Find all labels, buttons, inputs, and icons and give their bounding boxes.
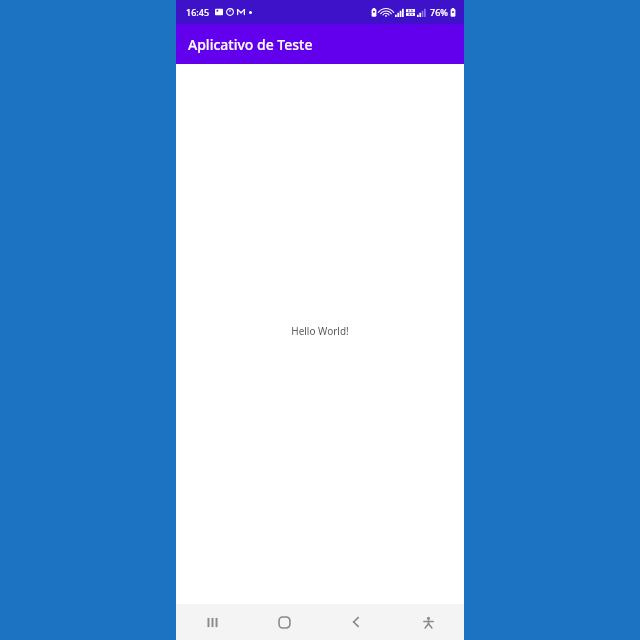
staticText: 16:45 bbox=[186, 6, 210, 18]
button[interactable]: Accessibility bbox=[392, 604, 464, 640]
button[interactable]: Home bbox=[248, 604, 320, 640]
staticText: Aplicativo de Teste bbox=[188, 35, 313, 54]
staticText: Hello World! bbox=[291, 324, 349, 338]
button[interactable]: Recent apps bbox=[176, 604, 248, 640]
staticText: 76% bbox=[430, 6, 448, 18]
button[interactable]: Back bbox=[320, 604, 392, 640]
